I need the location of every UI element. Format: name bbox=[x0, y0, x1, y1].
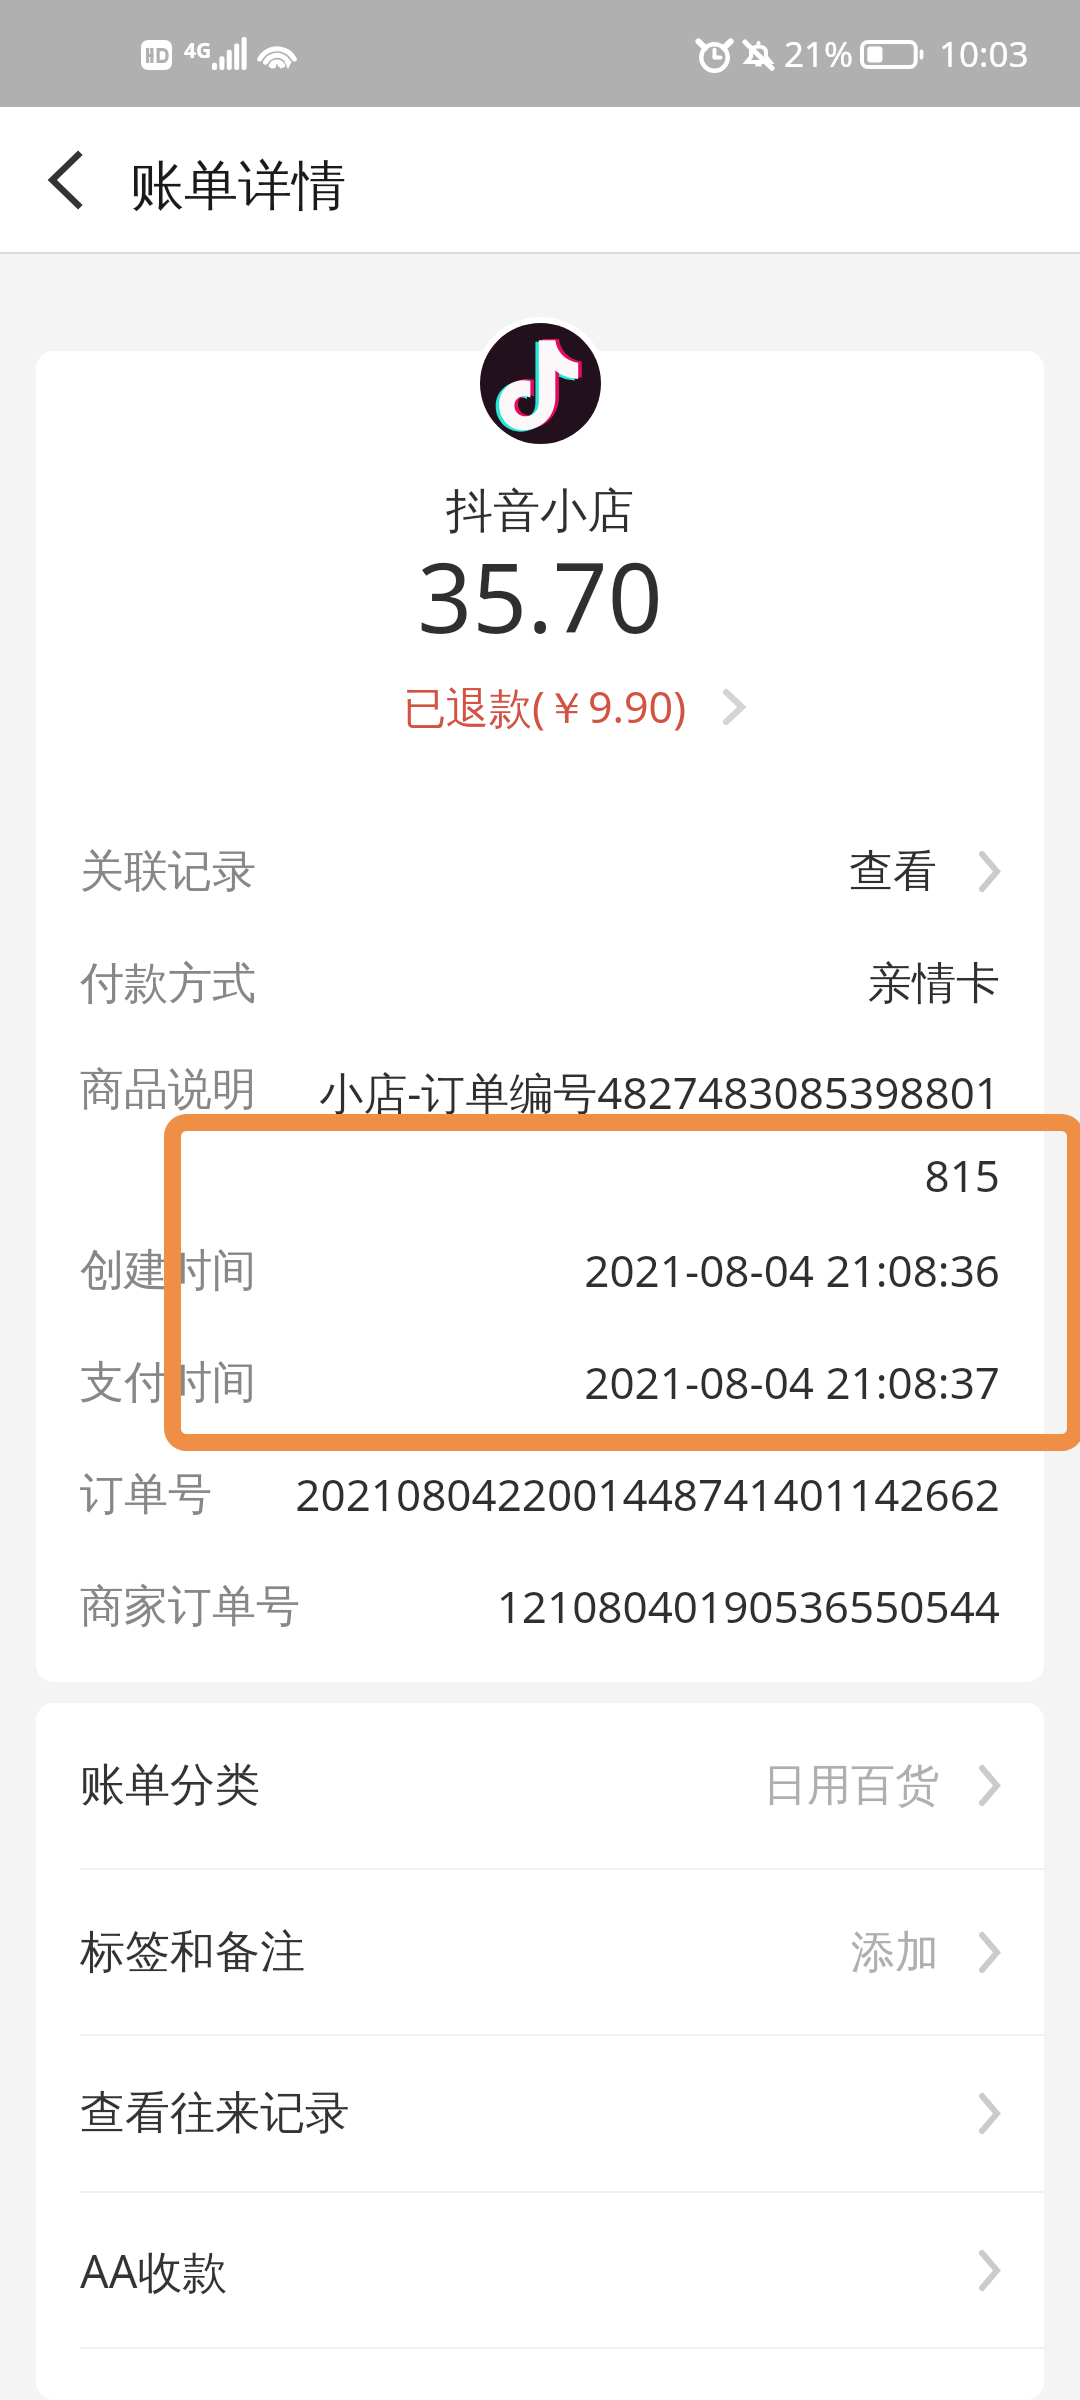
staticText: 已退款(￥9.90) bbox=[403, 677, 687, 736]
staticText: 35.70 bbox=[417, 530, 663, 661]
staticText: AA收款 bbox=[80, 2240, 228, 2301]
staticText: 815 bbox=[280, 1145, 1000, 1205]
staticText: 付款方式 bbox=[80, 956, 256, 1011]
staticText: 小店-订单编号4827483085398801 bbox=[280, 1062, 1000, 1122]
staticText: 账单分类 bbox=[80, 1757, 260, 1814]
staticText: 关联记录 bbox=[80, 844, 256, 899]
staticText: 标签和备注 bbox=[80, 1924, 305, 1981]
staticText: 2021-08-04 21:08:37 bbox=[280, 1352, 1000, 1412]
staticText: 2021080422001448741401142662 bbox=[236, 1464, 1000, 1524]
button[interactable]: 已退款(￥9.90) bbox=[395, 669, 753, 744]
staticText: 4G bbox=[184, 36, 212, 65]
staticText: 日用百货 bbox=[763, 1758, 939, 1813]
staticText: 查看往来记录 bbox=[80, 2085, 350, 2142]
staticText: 账单详情 bbox=[130, 152, 346, 220]
staticText: 支付时间 bbox=[80, 1355, 256, 1410]
staticText: 添加 bbox=[851, 1925, 939, 1980]
staticText: 商品说明 bbox=[80, 1062, 256, 1117]
staticText: 商家订单号 bbox=[80, 1579, 300, 1634]
staticText: 订单号 bbox=[80, 1467, 212, 1522]
staticText: 2021-08-04 21:08:36 bbox=[280, 1240, 1000, 1300]
button[interactable]: 查看往来记录 bbox=[36, 2036, 1044, 2191]
staticText: 查看 bbox=[280, 844, 937, 899]
staticText: 抖音小店 bbox=[446, 482, 634, 541]
staticText: 亲情卡 bbox=[280, 956, 1000, 1011]
button[interactable]: 账单分类 bbox=[36, 1703, 1044, 1868]
button[interactable]: 标签和备注 bbox=[36, 1870, 1044, 2034]
staticText: 10:03 bbox=[939, 30, 1029, 78]
button[interactable]: AA收款 bbox=[36, 2193, 1044, 2347]
staticText: 12108040190536550544 bbox=[324, 1576, 1000, 1636]
staticText: 21% bbox=[784, 30, 854, 78]
button[interactable]: Back bbox=[0, 115, 130, 245]
staticText: 创建时间 bbox=[80, 1243, 256, 1298]
